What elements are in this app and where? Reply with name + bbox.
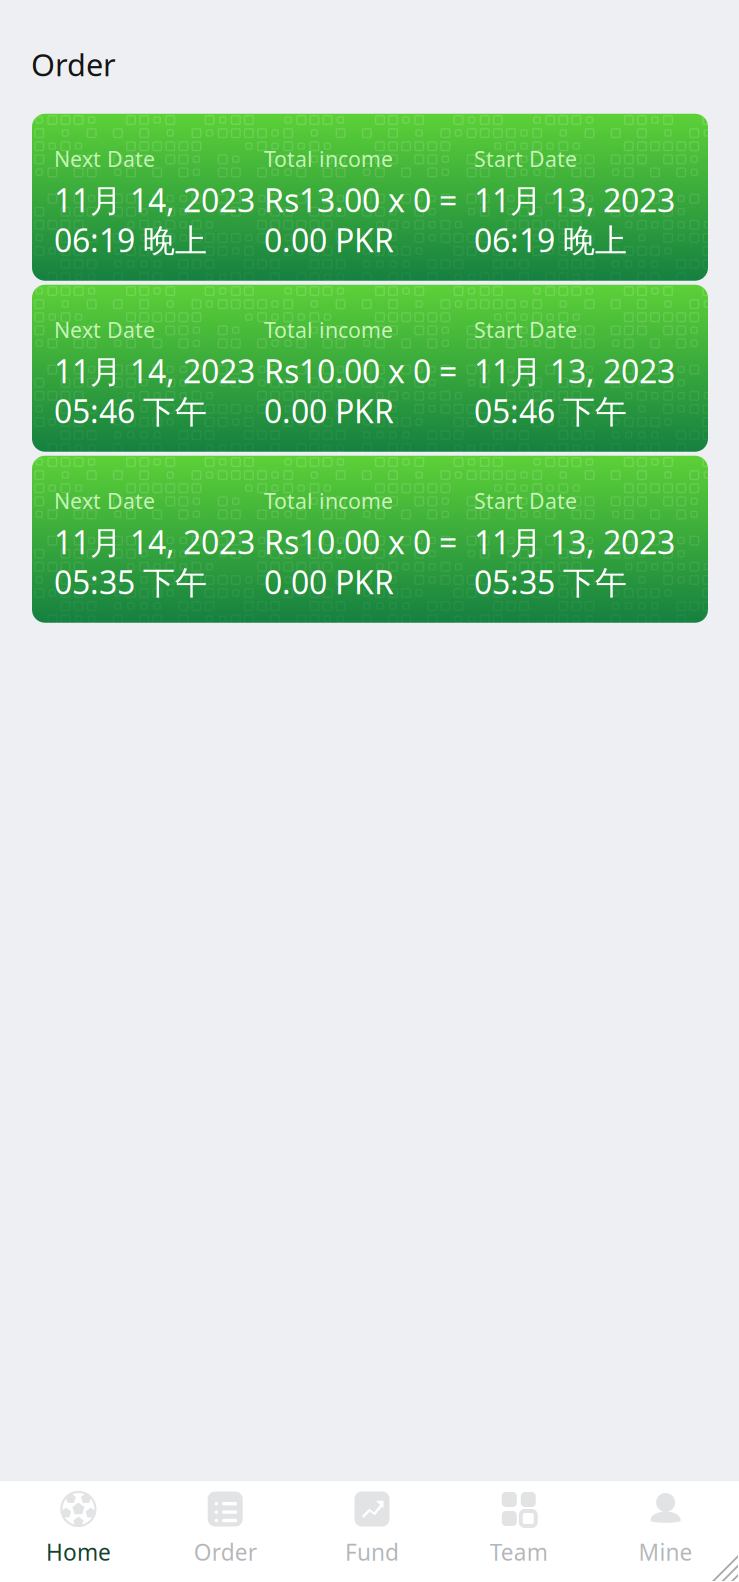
staticText: 05:46 下午 xyxy=(474,389,627,432)
staticText: 0.00 PKR xyxy=(264,389,394,432)
staticText: Order xyxy=(31,44,116,85)
staticText: 05:35 下午 xyxy=(474,560,627,603)
staticText: Start Date xyxy=(474,145,577,173)
staticText: Total income xyxy=(264,316,393,344)
staticText: Rs10.00 x 0 = xyxy=(264,520,457,563)
button[interactable]: Order xyxy=(152,1475,299,1582)
staticText: Mine xyxy=(639,1537,693,1567)
staticText: Team xyxy=(490,1537,548,1567)
staticText: Total income xyxy=(264,145,393,173)
button[interactable]: Next Date xyxy=(32,456,708,623)
staticText: Fund xyxy=(345,1537,399,1567)
staticText: 11月 13, 2023 xyxy=(474,349,675,392)
staticText: Next Date xyxy=(54,316,155,344)
staticText: 06:19 晚上 xyxy=(54,218,207,261)
staticText: 0.00 PKR xyxy=(264,218,394,261)
staticText: Rs10.00 x 0 = xyxy=(264,349,457,392)
button[interactable]: Mine xyxy=(592,1475,739,1582)
staticText: Rs13.00 x 0 = xyxy=(264,178,457,221)
button[interactable]: Team xyxy=(445,1475,592,1582)
staticText: Start Date xyxy=(474,487,577,515)
staticText: 05:35 下午 xyxy=(54,560,207,603)
button[interactable]: Next Date xyxy=(32,285,708,452)
staticText: Order xyxy=(194,1537,257,1567)
staticText: Home xyxy=(46,1537,111,1567)
staticText: 11月 14, 2023 xyxy=(54,178,255,221)
staticText: 05:46 下午 xyxy=(54,389,207,432)
button[interactable]: Fund xyxy=(299,1475,445,1582)
staticText: 0.00 PKR xyxy=(264,560,394,603)
staticText: Next Date xyxy=(54,487,155,515)
staticText: 11月 13, 2023 xyxy=(474,520,675,563)
staticText: Next Date xyxy=(54,145,155,173)
staticText: Start Date xyxy=(474,316,577,344)
staticText: 11月 13, 2023 xyxy=(474,178,675,221)
staticText: Total income xyxy=(264,487,393,515)
button[interactable]: Next Date xyxy=(32,114,708,281)
staticText: 11月 14, 2023 xyxy=(54,520,255,563)
staticText: 11月 14, 2023 xyxy=(54,349,255,392)
staticText: 06:19 晚上 xyxy=(474,218,627,261)
button[interactable]: Home xyxy=(5,1475,152,1582)
